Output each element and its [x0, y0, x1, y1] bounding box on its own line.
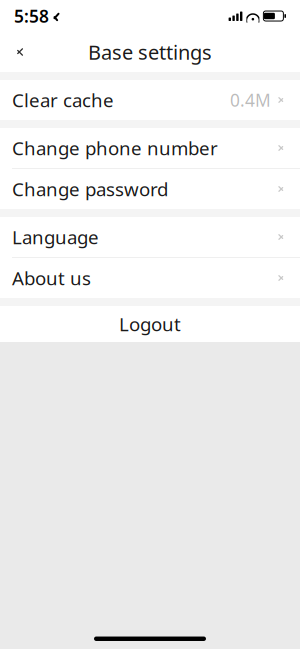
staticText: Base settings	[88, 39, 212, 65]
button[interactable]: Back	[0, 32, 34, 72]
staticText: About us	[12, 266, 91, 290]
button[interactable]: Clear cache	[0, 80, 300, 120]
staticText: 0.4M	[230, 88, 271, 111]
staticText: Change phone number	[12, 136, 218, 160]
button[interactable]: Language	[0, 217, 300, 257]
staticText: 5:58	[14, 4, 49, 27]
button[interactable]: About us	[0, 258, 300, 298]
staticText: Language	[12, 225, 99, 249]
button[interactable]: Change phone number	[0, 128, 300, 168]
staticText: Clear cache	[12, 88, 114, 112]
staticText: Change password	[12, 177, 168, 201]
staticText: Logout	[119, 312, 181, 336]
button[interactable]: Logout	[0, 306, 300, 342]
button[interactable]: Change password	[0, 169, 300, 209]
